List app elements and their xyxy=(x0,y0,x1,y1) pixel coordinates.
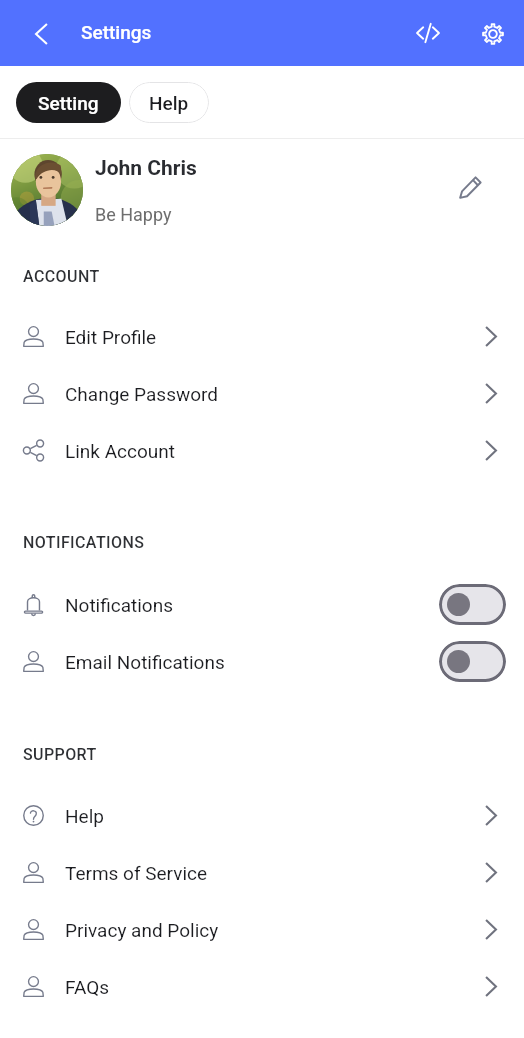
button[interactable]: Developer code xyxy=(406,11,450,55)
staticText: Settings xyxy=(81,21,152,43)
staticText: SUPPORT xyxy=(23,745,97,764)
button[interactable]: Toggle xyxy=(439,584,506,625)
staticText: Link Account xyxy=(65,440,175,462)
staticText: Terms of Service xyxy=(65,862,208,884)
staticText: Help xyxy=(149,92,189,114)
staticText: Setting xyxy=(38,92,99,114)
button[interactable]: Toggle xyxy=(439,641,506,682)
button[interactable]: Help xyxy=(129,82,209,123)
button[interactable]: John Chris xyxy=(0,146,524,234)
staticText: FAQs xyxy=(65,976,110,998)
button[interactable]: Edit Profile xyxy=(0,308,524,365)
button[interactable]: Privacy and Policy xyxy=(0,901,524,958)
button[interactable]: Settings xyxy=(470,11,515,56)
button[interactable]: Email Notifications xyxy=(0,633,524,690)
button[interactable]: Notifications xyxy=(0,576,524,633)
button[interactable]: Terms of Service xyxy=(0,844,524,901)
staticText: Change Password xyxy=(65,383,219,405)
button[interactable]: Setting xyxy=(16,82,121,123)
staticText: NOTIFICATIONS xyxy=(23,533,145,552)
button[interactable]: Link Account xyxy=(0,422,524,479)
button[interactable]: Change Password xyxy=(0,365,524,422)
staticText: John Chris xyxy=(95,156,197,181)
staticText: Edit Profile xyxy=(65,326,157,348)
button[interactable]: Edit profile xyxy=(448,165,492,209)
staticText: Be Happy xyxy=(95,204,172,225)
staticText: Email Notifications xyxy=(65,651,225,673)
button[interactable]: Help xyxy=(0,787,524,844)
staticText: Help xyxy=(65,805,104,827)
staticText: Notifications xyxy=(65,594,174,616)
staticText: ACCOUNT xyxy=(23,267,100,286)
staticText: Privacy and Policy xyxy=(65,919,219,941)
button[interactable]: FAQs xyxy=(0,958,524,1015)
button[interactable]: Back xyxy=(20,12,63,55)
